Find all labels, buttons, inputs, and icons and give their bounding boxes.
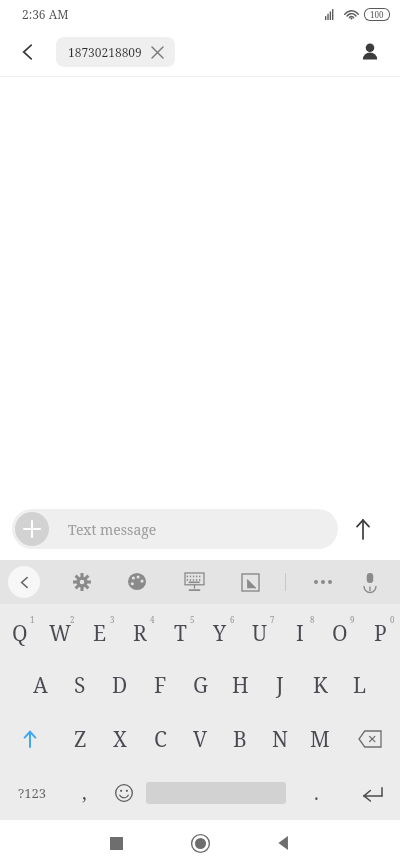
button[interactable]: , xyxy=(64,766,104,820)
staticText: 4 xyxy=(150,614,155,625)
staticText: 2:36 AM xyxy=(22,6,69,22)
staticText: . xyxy=(314,780,319,806)
staticText: J xyxy=(276,671,284,700)
staticText: M xyxy=(310,725,330,754)
staticText: H xyxy=(232,671,249,700)
button[interactable]: Recents xyxy=(96,823,136,863)
staticText: L xyxy=(353,671,367,700)
staticText: W xyxy=(49,619,71,648)
button[interactable]: R xyxy=(120,604,160,658)
button[interactable]: Voice input xyxy=(352,564,388,600)
button[interactable]: Contact details xyxy=(350,32,390,72)
button[interactable]: Collapse toolbar xyxy=(8,566,40,598)
button[interactable]: Backspace xyxy=(340,712,400,766)
button[interactable]: E xyxy=(80,604,120,658)
staticText: Q xyxy=(12,619,28,648)
button[interactable]: O xyxy=(320,604,360,658)
button[interactable]: W xyxy=(40,604,80,658)
staticText: 7 xyxy=(270,614,275,625)
staticText: P xyxy=(374,619,387,648)
button[interactable]: P xyxy=(360,604,400,658)
staticText: Text message xyxy=(68,520,157,539)
button[interactable]: D xyxy=(100,658,140,712)
button[interactable]: Q xyxy=(0,604,40,658)
button[interactable]: Add attachment xyxy=(15,512,49,546)
button[interactable]: C xyxy=(140,712,180,766)
staticText: D xyxy=(112,671,128,700)
button[interactable]: Resize keyboard xyxy=(232,564,268,600)
button[interactable]: . xyxy=(288,766,344,820)
staticText: C xyxy=(154,725,167,754)
staticText: 5 xyxy=(190,614,195,625)
staticText: 2 xyxy=(70,614,75,625)
button[interactable]: M xyxy=(300,712,340,766)
staticText: E xyxy=(93,619,107,648)
staticText: K xyxy=(313,671,328,700)
staticText: R xyxy=(133,619,147,648)
staticText: N xyxy=(272,725,289,754)
button[interactable]: F xyxy=(140,658,180,712)
staticText: O xyxy=(332,619,348,648)
button[interactable]: Back xyxy=(8,32,48,72)
staticText: , xyxy=(82,780,87,806)
button[interactable]: More options xyxy=(305,564,341,600)
staticText: X xyxy=(113,725,127,754)
button[interactable]: T xyxy=(160,604,200,658)
button[interactable]: 18730218809 xyxy=(56,37,175,67)
staticText: ?123 xyxy=(18,784,46,802)
button[interactable]: S xyxy=(60,658,100,712)
staticText: F xyxy=(154,671,167,700)
button[interactable]: K xyxy=(300,658,340,712)
staticText: 0 xyxy=(390,614,395,625)
button[interactable]: J xyxy=(260,658,300,712)
staticText: A xyxy=(33,671,48,700)
button[interactable]: L xyxy=(340,658,380,712)
button[interactable]: Shift xyxy=(0,712,60,766)
staticText: B xyxy=(233,725,247,754)
button[interactable]: Home xyxy=(180,823,220,863)
button[interactable]: G xyxy=(180,658,220,712)
button[interactable]: Emoji xyxy=(104,766,144,820)
button[interactable]: N xyxy=(260,712,300,766)
staticText: S xyxy=(74,671,86,700)
button[interactable]: U xyxy=(240,604,280,658)
staticText: 1 xyxy=(30,614,35,625)
button[interactable]: Back xyxy=(264,823,304,863)
button[interactable]: Z xyxy=(60,712,100,766)
staticText: U xyxy=(252,619,268,648)
button[interactable]: B xyxy=(220,712,260,766)
button[interactable]: I xyxy=(280,604,320,658)
staticText: V xyxy=(193,725,208,754)
staticText: 3 xyxy=(110,614,115,625)
staticText: 18730218809 xyxy=(68,44,142,60)
staticText: I xyxy=(296,619,304,648)
staticText: T xyxy=(174,619,187,648)
button[interactable]: Send xyxy=(338,504,388,554)
button[interactable]: Themes xyxy=(119,564,155,600)
button[interactable]: V xyxy=(180,712,220,766)
staticText: Y xyxy=(213,619,227,648)
staticText: 100 xyxy=(370,9,384,20)
button[interactable]: Y xyxy=(200,604,240,658)
button[interactable]: ?123 xyxy=(0,766,64,820)
button[interactable]: H xyxy=(220,658,260,712)
staticText: Z xyxy=(74,725,87,754)
staticText: 8 xyxy=(310,614,315,625)
button[interactable]: Keyboard layout xyxy=(176,564,212,600)
button[interactable]: Enter xyxy=(344,766,400,820)
button[interactable]: X xyxy=(100,712,140,766)
staticText: G xyxy=(193,671,208,700)
staticText: 6 xyxy=(230,614,235,625)
button[interactable]: A xyxy=(20,658,60,712)
button[interactable]: Settings xyxy=(64,564,100,600)
staticText: 9 xyxy=(350,614,355,625)
button[interactable]: Add attachment xyxy=(12,509,338,549)
